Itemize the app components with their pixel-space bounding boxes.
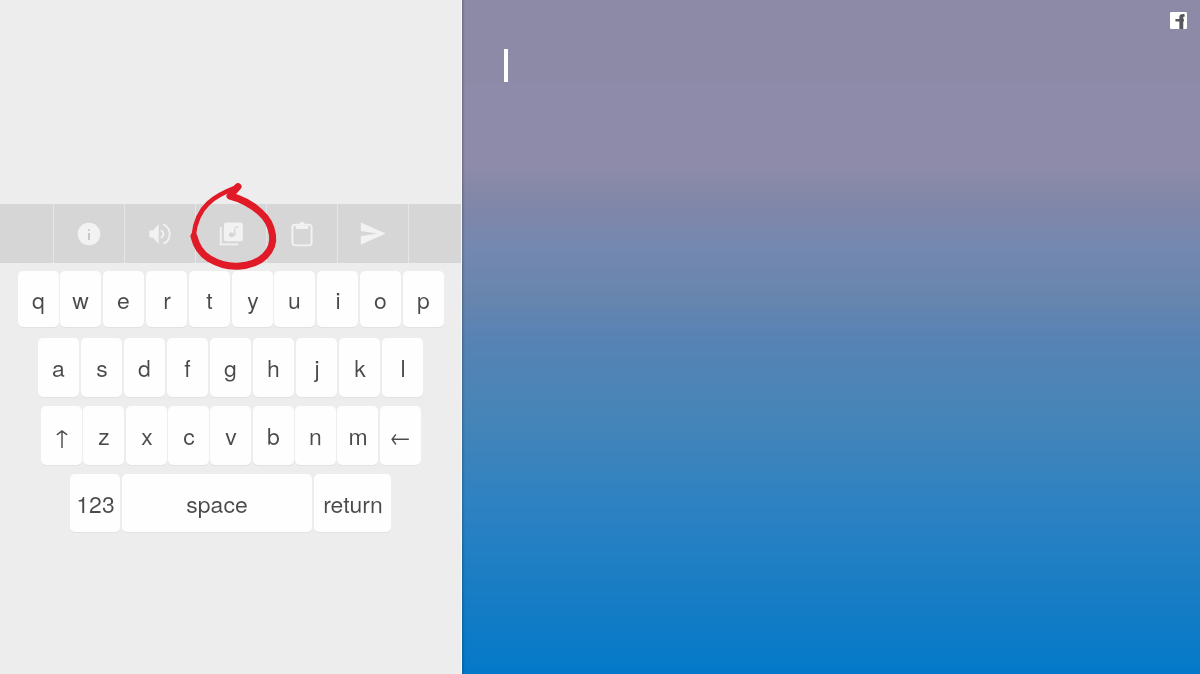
button[interactable]: Volume bbox=[124, 204, 195, 263]
button[interactable]: p bbox=[403, 271, 444, 327]
staticText: v bbox=[225, 419, 237, 452]
button[interactable]: a bbox=[38, 338, 79, 397]
button[interactable]: i bbox=[317, 271, 358, 327]
button[interactable]: s bbox=[81, 338, 122, 397]
button[interactable]: n bbox=[295, 406, 336, 465]
button[interactable]: return bbox=[314, 474, 391, 532]
button[interactable]: Facebook bbox=[1170, 12, 1187, 29]
button[interactable]: x bbox=[126, 406, 167, 465]
button[interactable]: f bbox=[167, 338, 208, 397]
staticText: o bbox=[374, 283, 387, 316]
staticText: s bbox=[96, 351, 108, 384]
staticText: k bbox=[354, 351, 366, 384]
staticText: l bbox=[400, 351, 406, 384]
staticText: y bbox=[247, 283, 259, 316]
staticText: j bbox=[314, 351, 320, 384]
button[interactable]: Music library bbox=[195, 204, 266, 263]
staticText: m bbox=[348, 419, 368, 452]
staticText: ↑ bbox=[53, 419, 71, 452]
button[interactable]: b bbox=[253, 406, 294, 465]
button[interactable]: m bbox=[337, 406, 378, 465]
button[interactable]: w bbox=[60, 271, 101, 327]
button[interactable]: k bbox=[339, 338, 380, 397]
staticText: r bbox=[163, 283, 171, 316]
button[interactable]: q bbox=[18, 271, 59, 327]
staticText: x bbox=[141, 419, 153, 452]
button[interactable]: o bbox=[360, 271, 401, 327]
button[interactable]: ← bbox=[380, 406, 421, 465]
staticText: p bbox=[417, 283, 430, 316]
button[interactable]: Info bbox=[53, 204, 124, 263]
staticText: q bbox=[32, 283, 45, 316]
staticText: ← bbox=[389, 419, 412, 452]
staticText: t bbox=[206, 283, 213, 316]
button[interactable]: r bbox=[146, 271, 187, 327]
button[interactable]: Send bbox=[337, 204, 408, 263]
staticText: f bbox=[184, 351, 191, 384]
staticText: return bbox=[323, 487, 383, 520]
staticText: e bbox=[117, 283, 130, 316]
button[interactable]: 123 bbox=[70, 474, 120, 532]
staticText: h bbox=[267, 351, 280, 384]
button[interactable]: Paste bbox=[266, 204, 337, 263]
staticText: d bbox=[138, 351, 151, 384]
button[interactable]: j bbox=[296, 338, 337, 397]
button[interactable]: g bbox=[210, 338, 251, 397]
button[interactable]: e bbox=[103, 271, 144, 327]
button[interactable]: space bbox=[122, 474, 312, 532]
staticText: a bbox=[52, 351, 65, 384]
button[interactable]: c bbox=[168, 406, 209, 465]
staticText: b bbox=[267, 419, 280, 452]
button[interactable]: z bbox=[83, 406, 124, 465]
staticText: c bbox=[183, 419, 195, 452]
staticText: i bbox=[335, 283, 341, 316]
button[interactable]: h bbox=[253, 338, 294, 397]
staticText: z bbox=[98, 419, 110, 452]
button[interactable]: v bbox=[210, 406, 251, 465]
button[interactable]: y bbox=[232, 271, 273, 327]
staticText: w bbox=[72, 283, 89, 316]
button[interactable]: d bbox=[124, 338, 165, 397]
button[interactable]: u bbox=[274, 271, 315, 327]
staticText: g bbox=[224, 351, 237, 384]
button[interactable]: t bbox=[189, 271, 230, 327]
staticText: n bbox=[309, 419, 322, 452]
staticText: u bbox=[288, 283, 301, 316]
staticText: 123 bbox=[76, 487, 115, 520]
button[interactable]: ↑ bbox=[41, 406, 82, 465]
button[interactable]: l bbox=[382, 338, 423, 397]
staticText: space bbox=[186, 487, 248, 520]
